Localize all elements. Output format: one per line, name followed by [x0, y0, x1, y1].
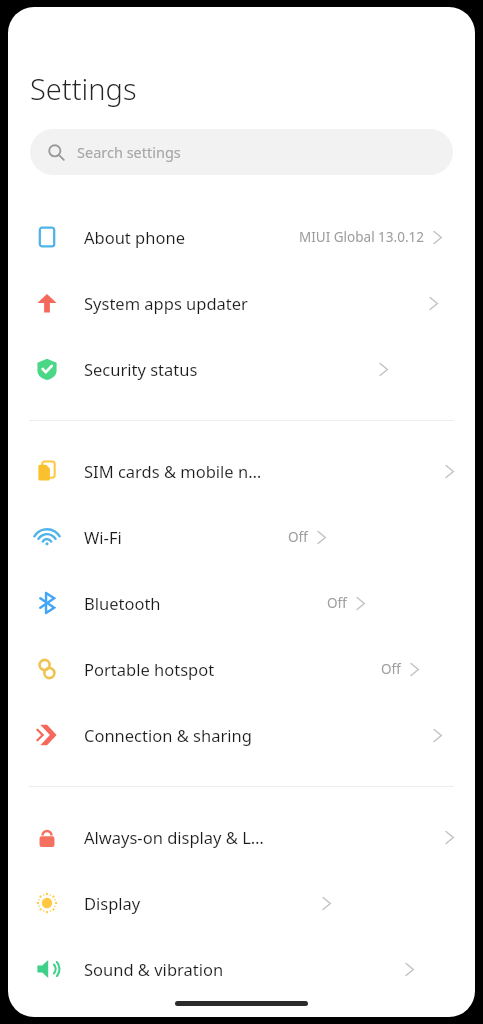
- button[interactable]: Security status: [8, 336, 475, 402]
- staticText: Display: [84, 892, 141, 914]
- button[interactable]: About phone: [8, 204, 475, 270]
- staticText: Portable hotspot: [84, 658, 215, 680]
- staticText: SIM cards & mobile networks: [84, 460, 264, 482]
- staticText: Wi-Fi: [84, 526, 122, 548]
- staticText: MIUI Global 13.0.12: [299, 228, 424, 246]
- button[interactable]: Display: [8, 870, 475, 936]
- button[interactable]: System apps updater: [8, 270, 475, 336]
- staticText: Security status: [84, 358, 198, 380]
- button[interactable]: Sound & vibration: [8, 936, 475, 1002]
- button[interactable]: Portable hotspot: [8, 636, 475, 702]
- staticText: Search settings: [77, 142, 181, 162]
- button[interactable]: Always-on display & Lock screen: [8, 804, 475, 870]
- staticText: Settings: [30, 69, 137, 108]
- staticText: Off: [381, 660, 401, 678]
- button[interactable]: Connection & sharing: [8, 702, 475, 768]
- button[interactable]: Search settings: [30, 129, 453, 175]
- button[interactable]: Wi-Fi: [8, 504, 475, 570]
- staticText: Always-on display & Lock screen: [84, 826, 264, 848]
- staticText: About phone: [84, 226, 185, 248]
- staticText: Off: [327, 594, 347, 612]
- button[interactable]: SIM cards & mobile networks: [8, 438, 475, 504]
- staticText: Bluetooth: [84, 592, 161, 614]
- staticText: Sound & vibration: [84, 958, 224, 980]
- staticText: System apps updater: [84, 292, 248, 314]
- button[interactable]: Bluetooth: [8, 570, 475, 636]
- staticText: Off: [288, 528, 308, 546]
- staticText: Connection & sharing: [84, 724, 252, 746]
